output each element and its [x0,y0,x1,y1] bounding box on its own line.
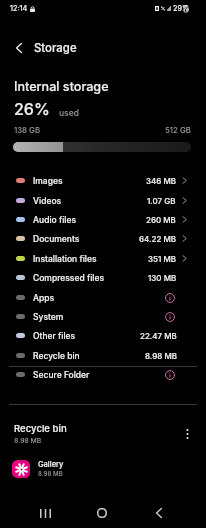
staticText: Apps [33,293,55,303]
staticText: 1.07 GB [147,196,176,206]
staticText: 351 MB [148,254,176,264]
staticText: 8.98 MB [14,436,42,444]
staticText: 22.47 MB [140,331,177,341]
staticText: Gallery [38,460,64,469]
staticText: Secure Folder [33,370,90,380]
staticText: Other files [33,331,76,341]
staticText: 26% [14,99,50,118]
staticText: Installation files [33,254,97,264]
button[interactable]: Installation files [0,249,206,268]
staticText: 130 MB [148,273,177,283]
button[interactable]: Compressed files [0,268,206,287]
button[interactable]: Documents [0,229,206,248]
staticText: Documents [33,234,80,244]
staticText: Recycle bin [14,423,67,435]
button[interactable]: Apps [0,288,206,307]
staticText: 8.98 MB [38,470,63,478]
staticText: used [59,108,79,118]
staticText: Images [33,176,63,186]
button[interactable]: Secure Folder [0,365,206,384]
staticText: Storage [34,41,77,55]
button[interactable]: Recent apps [31,499,59,527]
staticText: 512 GB [165,125,191,134]
button[interactable]: Audio files [0,210,206,229]
button[interactable]: Navigate up [5,34,33,62]
staticText: 138 GB [14,125,41,134]
staticText: System [33,312,64,322]
staticText: Audio files [33,215,77,225]
staticText: 260 MB [146,215,176,225]
staticText: Compressed files [33,273,105,283]
staticText: Videos [33,196,62,206]
button[interactable]: System [0,307,206,326]
button[interactable]: Home [88,499,116,527]
staticText: 346 MB [146,176,176,186]
button[interactable]: Videos [0,191,206,210]
button[interactable]: More options [177,424,197,444]
button[interactable]: Images [0,171,206,190]
staticText: 8.98 MB [145,351,177,361]
button[interactable]: Back [145,499,173,527]
button[interactable]: Recycle bin [0,346,206,365]
staticText: Recycle bin [33,351,80,361]
staticText: Internal storage [14,79,109,94]
staticText: 29% [173,4,190,13]
button[interactable]: Gallery [0,456,206,482]
staticText: 64.22 MB [139,234,176,244]
button[interactable]: Other files [0,326,206,345]
staticText: 12:14 [10,4,28,13]
